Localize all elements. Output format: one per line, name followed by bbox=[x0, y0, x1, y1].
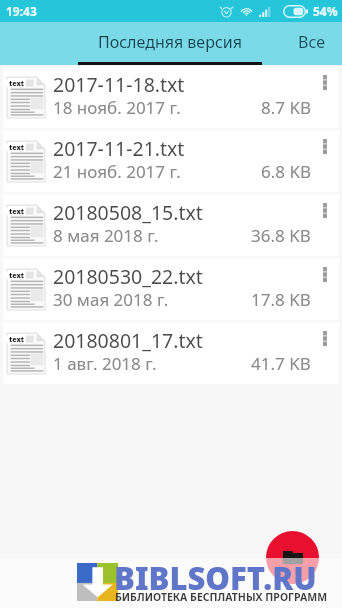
staticText: БИБЛИОТЕКА БЕСПЛАТНЫХ ПРОГРАММ bbox=[115, 590, 328, 604]
staticText: 8 мая 2018 г. bbox=[53, 224, 159, 247]
staticText: 20180530_22.txt bbox=[53, 263, 203, 290]
staticText: text bbox=[9, 335, 25, 343]
button[interactable]: More options bbox=[313, 130, 339, 168]
button[interactable]: text bbox=[3, 322, 339, 384]
staticText: BIBLSOFT.RU bbox=[114, 557, 317, 599]
staticText: 8.7 KB bbox=[261, 96, 311, 119]
staticText: text bbox=[9, 207, 25, 215]
staticText: 20180801_17.txt bbox=[53, 327, 203, 354]
staticText: 2017-11-18.txt bbox=[53, 71, 185, 98]
button[interactable]: text bbox=[3, 66, 339, 128]
staticText: 2017-11-21.txt bbox=[53, 135, 185, 162]
button[interactable]: More options bbox=[313, 258, 339, 296]
button[interactable]: New folder bbox=[266, 531, 319, 584]
staticText: 41.7 KB bbox=[251, 352, 311, 375]
button[interactable]: Последняя версия bbox=[78, 22, 262, 65]
button[interactable]: Все bbox=[262, 22, 342, 65]
staticText: Последняя версия bbox=[98, 31, 242, 53]
staticText: 1 авг. 2018 г. bbox=[53, 352, 157, 375]
staticText: 36.8 KB bbox=[251, 224, 311, 247]
button[interactable]: text bbox=[3, 194, 339, 256]
staticText: 54% bbox=[313, 3, 338, 19]
staticText: 17.8 KB bbox=[251, 288, 311, 311]
staticText: 30 мая 2018 г. bbox=[53, 288, 169, 311]
button[interactable]: text bbox=[3, 130, 339, 192]
button[interactable]: text bbox=[3, 258, 339, 320]
staticText: text bbox=[9, 271, 25, 279]
staticText: text bbox=[9, 79, 25, 87]
button[interactable]: More options bbox=[313, 66, 339, 104]
button[interactable]: More options bbox=[313, 194, 339, 232]
staticText: Все bbox=[298, 31, 325, 53]
staticText: 6.8 KB bbox=[261, 160, 311, 183]
staticText: 20180508_15.txt bbox=[53, 199, 203, 226]
staticText: 18 нояб. 2017 г. bbox=[53, 96, 181, 119]
staticText: 21 нояб. 2017 г. bbox=[53, 160, 181, 183]
staticText: text bbox=[9, 143, 25, 151]
button[interactable]: More options bbox=[313, 322, 339, 360]
staticText: 19:43 bbox=[6, 3, 37, 19]
